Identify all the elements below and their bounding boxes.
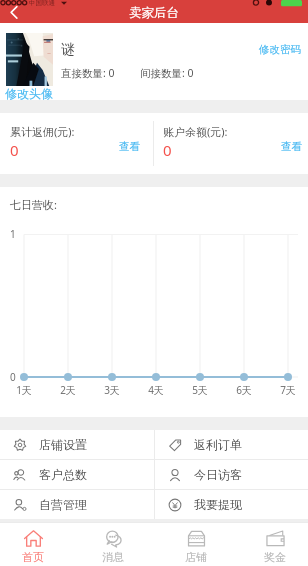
staticText: 修改密码 [259, 43, 301, 56]
button[interactable]: 自营管理 [0, 490, 154, 519]
staticText: 奖金 [264, 550, 286, 564]
staticText: 2天 [54, 383, 82, 397]
button[interactable]: 查看 [280, 140, 303, 153]
button[interactable]: 修改密码 [258, 43, 302, 56]
staticText: 1天 [10, 383, 38, 397]
button[interactable]: 店铺设置 [0, 430, 154, 459]
button[interactable]: 今日访客 [155, 460, 308, 489]
staticText: 5天 [186, 383, 214, 397]
staticText: 3天 [98, 383, 126, 397]
staticText: 0 [163, 140, 172, 160]
staticText: 查看 [119, 140, 140, 153]
button[interactable]: Back [5, 3, 23, 21]
button[interactable]: 首页 [7, 523, 59, 566]
staticText: 账户余额(元): [163, 124, 228, 139]
staticText: 直接数量: 0 [61, 66, 115, 80]
button[interactable]: 修改头像 [5, 86, 53, 101]
staticText: 客户总数 [39, 467, 87, 482]
staticText: 谜 [61, 41, 75, 59]
staticText: 自营管理 [39, 497, 87, 512]
button[interactable]: 返利订单 [155, 430, 308, 459]
staticText: 0 [10, 140, 19, 160]
staticText: 卖家后台 [129, 5, 179, 21]
staticText: 今日访客 [194, 467, 242, 482]
staticText: 七日营收: [10, 197, 57, 212]
button[interactable]: 客户总数 [0, 460, 154, 489]
staticText: 6天 [230, 383, 258, 397]
button[interactable]: 店铺 [170, 523, 222, 566]
staticText: 间接数量: 0 [140, 66, 194, 80]
staticText: 7天 [274, 383, 302, 397]
staticText: 我要提现 [194, 497, 242, 512]
staticText: 修改头像 [5, 86, 53, 101]
staticText: 店铺设置 [39, 437, 87, 452]
staticText: 4天 [142, 383, 170, 397]
staticText: 消息 [102, 550, 124, 564]
button[interactable]: 消息 [87, 523, 139, 566]
staticText: 查看 [281, 140, 302, 153]
staticText: 1 [10, 227, 16, 241]
button[interactable]: 查看 [118, 140, 141, 153]
staticText: 中国联通 [29, 0, 55, 7]
staticText: 首页 [22, 550, 44, 564]
button[interactable]: 我要提现 [155, 490, 308, 519]
staticText: 累计返佣(元): [10, 124, 75, 139]
button[interactable]: Avatar [6, 33, 53, 86]
staticText: 店铺 [185, 550, 207, 564]
button[interactable]: 奖金 [249, 523, 301, 566]
staticText: 返利订单 [194, 437, 242, 452]
staticText: 0 [10, 370, 16, 384]
